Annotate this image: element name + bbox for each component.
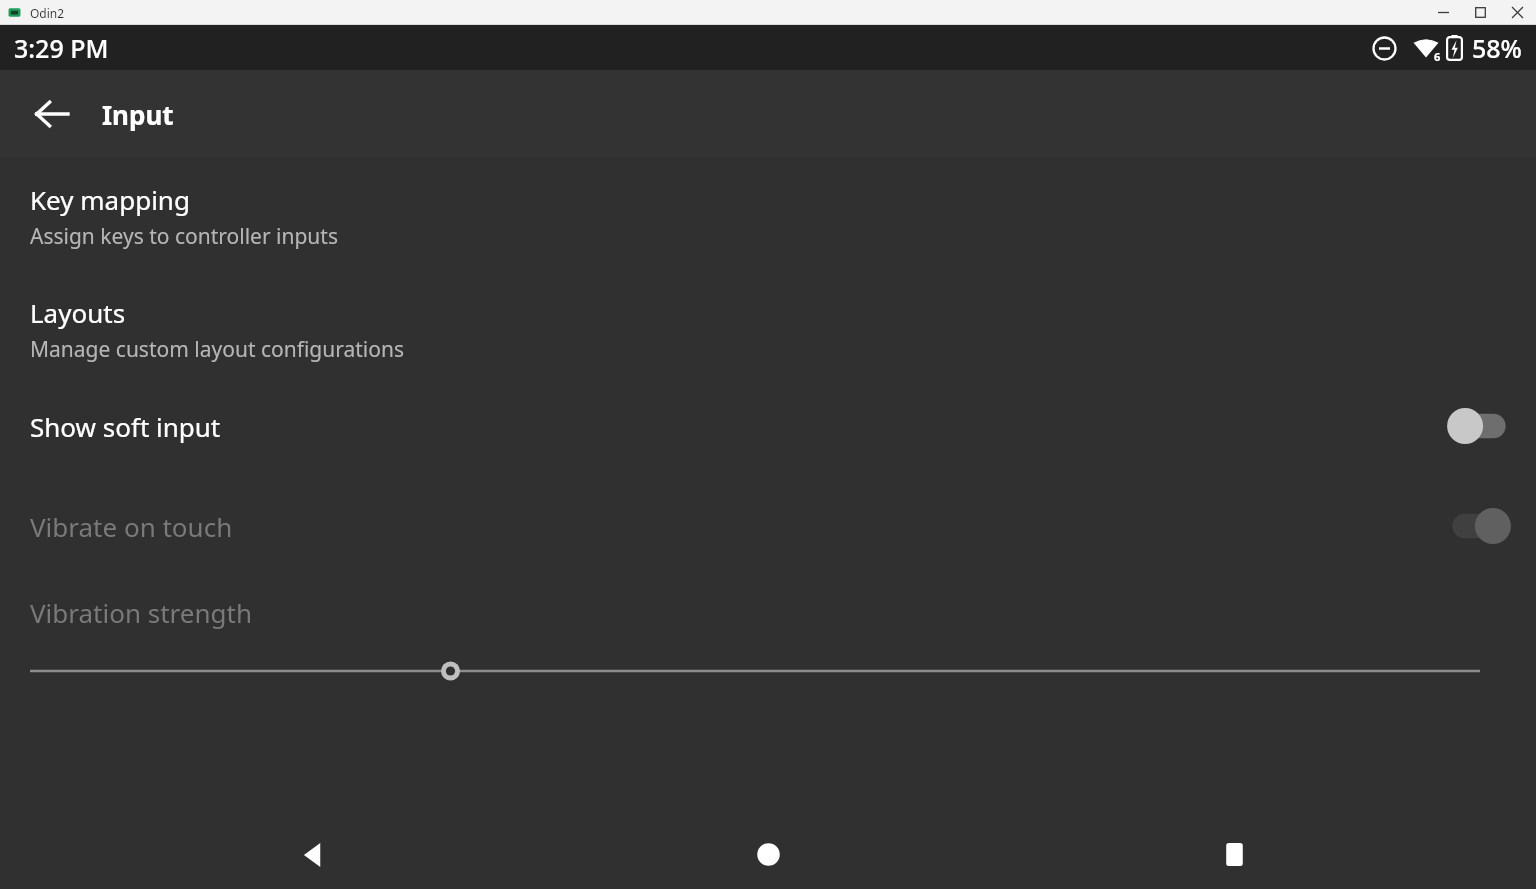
button[interactable]: Recent apps [1198,820,1270,889]
staticText: Odin2 [30,5,65,21]
staticText: Key mapping [30,182,190,217]
staticText: Vibrate on touch [30,509,233,544]
staticText: Layouts [30,295,126,330]
staticText: Assign keys to controller inputs [30,222,338,251]
button[interactable]: Maximize [1462,0,1499,25]
button[interactable]: Back [16,78,88,150]
button[interactable]: Vibrate on touch [0,500,1536,552]
staticText: Show soft input [30,409,221,444]
button[interactable]: Back [277,820,349,889]
staticText: Input [102,97,174,132]
button[interactable]: Vibration strength slider [0,654,1536,688]
staticText: 58% [1472,31,1522,65]
staticText: Manage custom layout configurations [30,335,405,364]
button[interactable]: Vibration strength [0,592,1536,632]
staticText: 6 [1434,49,1441,64]
button[interactable]: Show soft input [0,400,1536,452]
button[interactable]: Close [1499,0,1536,25]
staticText: 3:29 PM [14,31,109,65]
button[interactable]: Key mapping [0,182,1536,251]
button[interactable]: Minimize [1425,0,1462,25]
staticText: Vibration strength [30,595,252,630]
button[interactable]: Layouts [0,295,1536,364]
button[interactable]: Home [732,820,804,889]
